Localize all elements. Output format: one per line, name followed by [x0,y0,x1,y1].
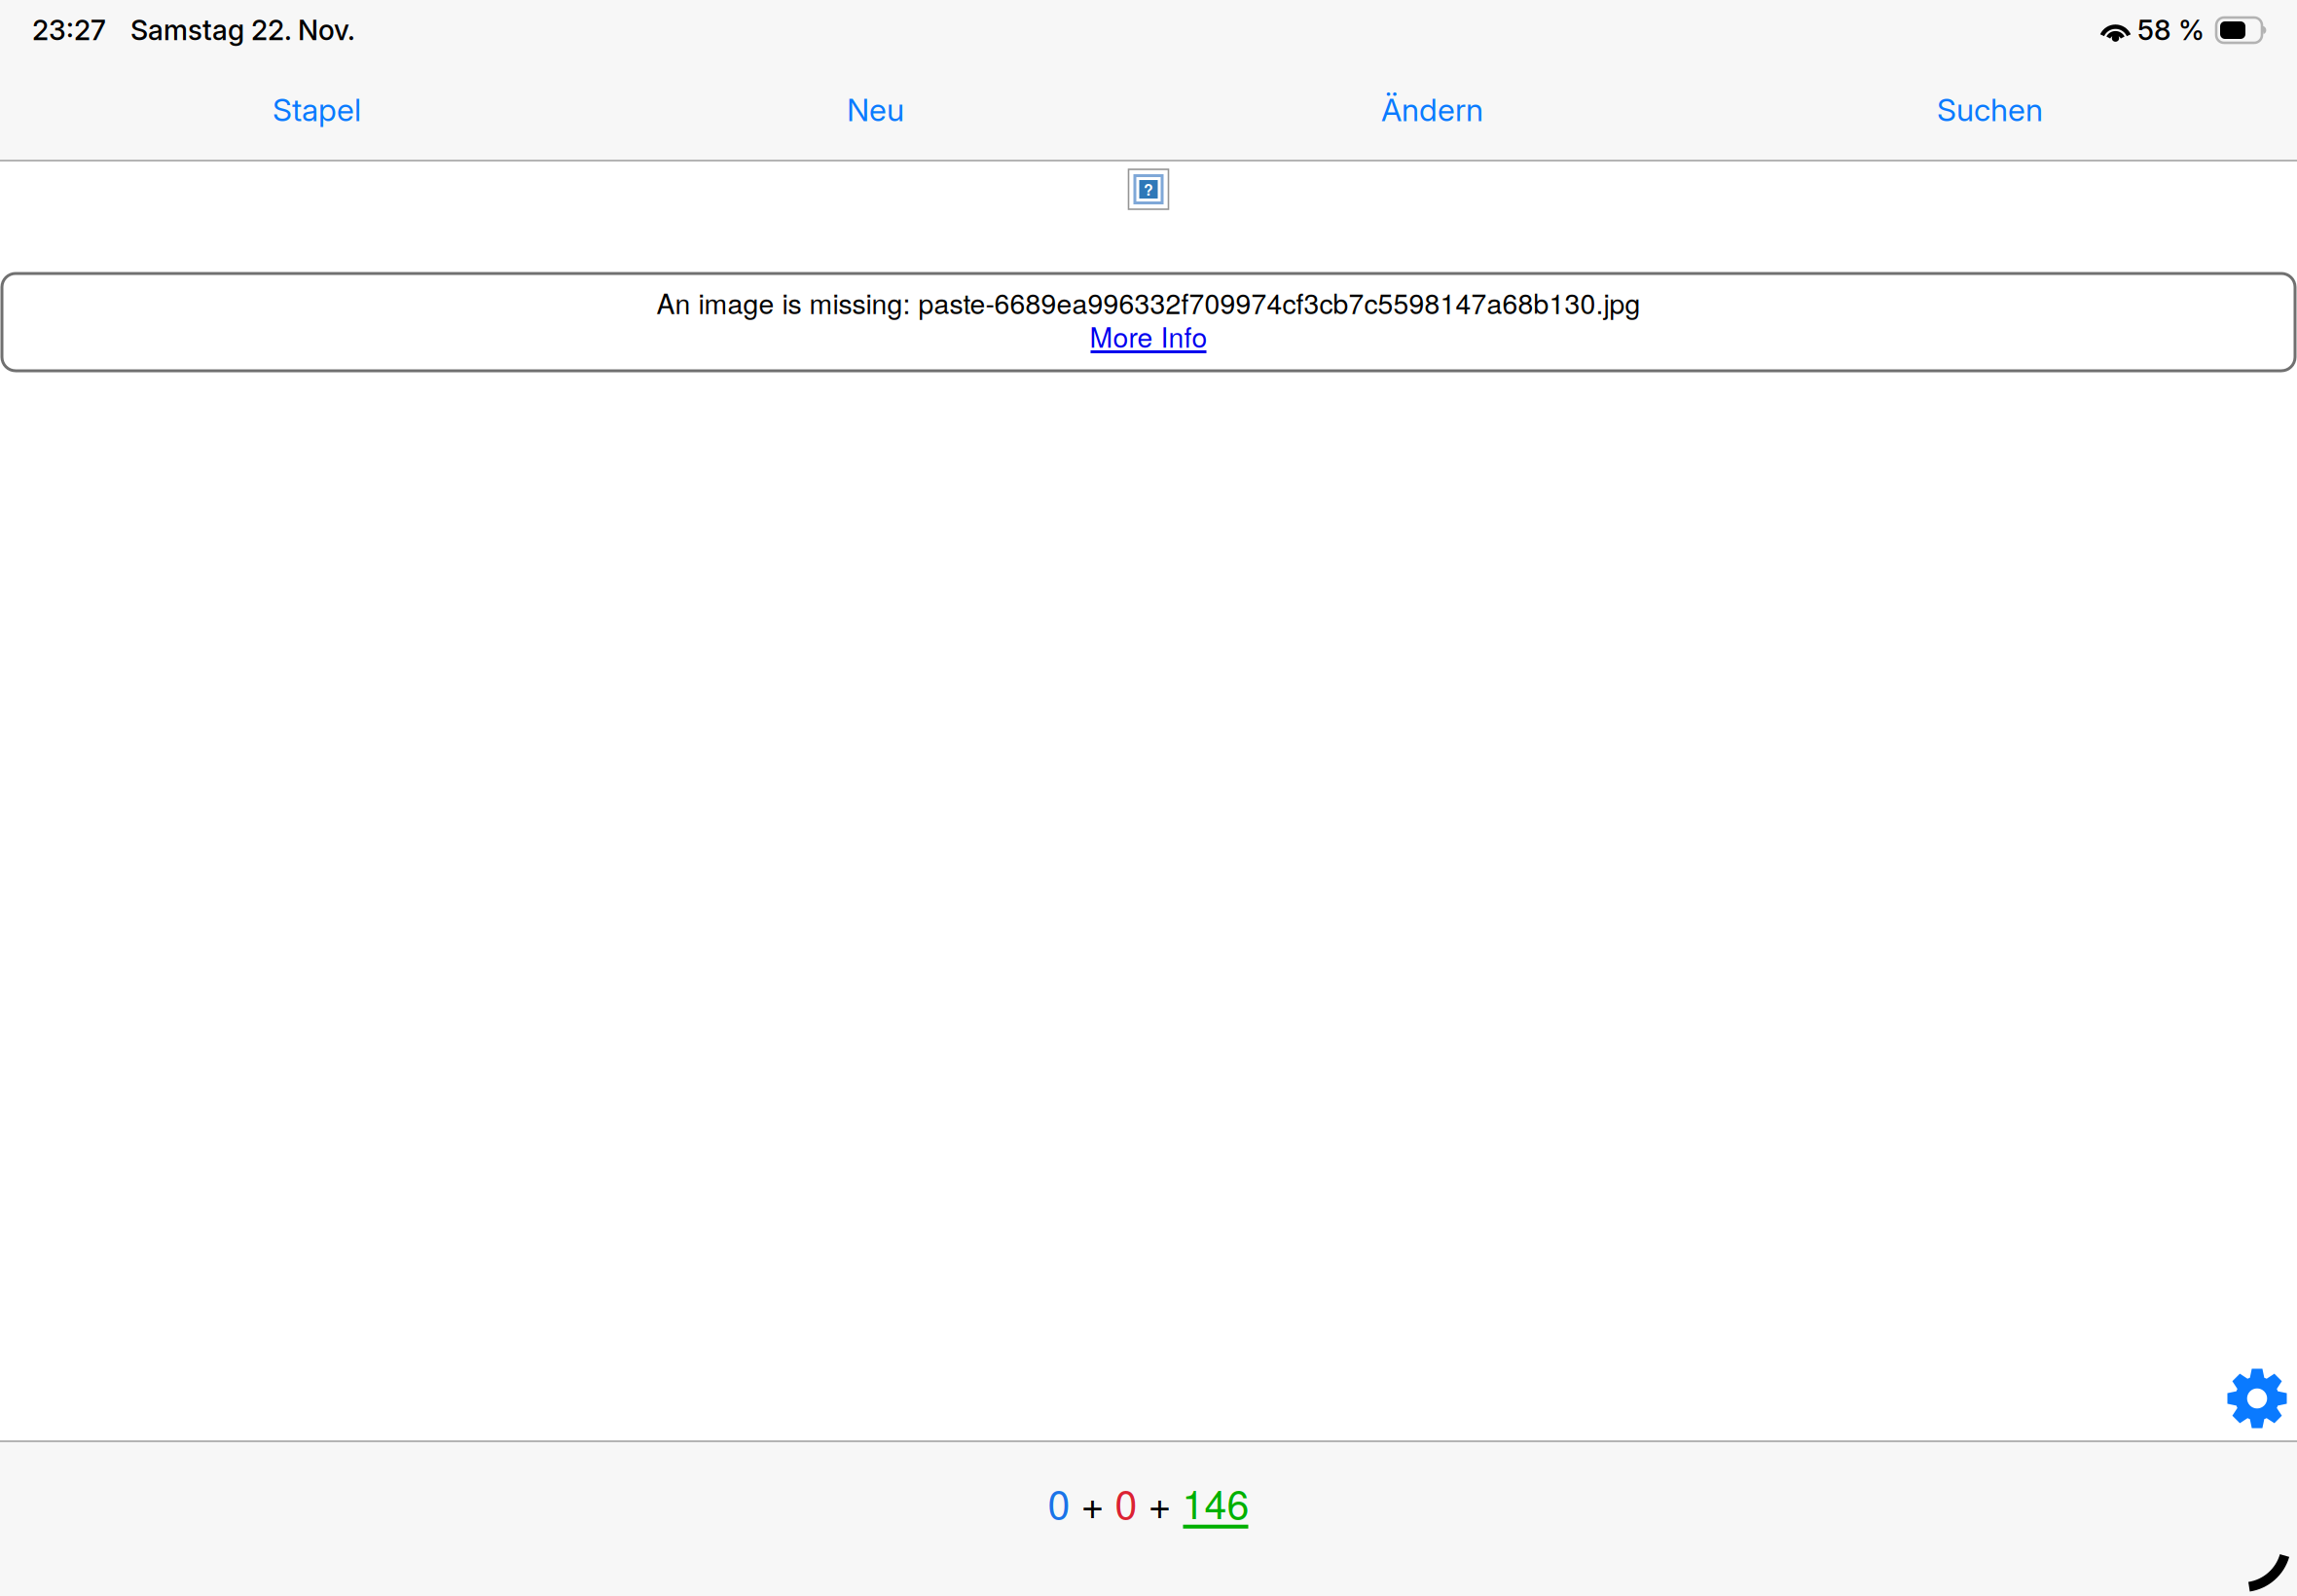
staticText: Ändern [1381,91,1483,129]
staticText: ? [1144,178,1153,200]
staticText: 146 [1182,1473,1249,1531]
staticText: 58 % [2137,13,2205,47]
staticText: 23:27 [32,13,106,47]
staticText: Neu [847,91,904,129]
staticText: More Info [1090,316,1207,355]
staticText: Stapel [273,91,361,129]
staticText: Suchen [1937,91,2043,129]
button[interactable]: Suchen [1937,60,2043,160]
button[interactable]: Undo [2235,1540,2297,1596]
staticText: + [1137,1473,1182,1531]
button[interactable]: Settings [2227,1368,2287,1429]
button[interactable]: Stapel [273,60,361,160]
staticText: + [1070,1473,1115,1531]
button[interactable]: More Info [1090,321,1207,353]
button[interactable]: Neu [847,60,904,160]
staticText: Samstag 22. Nov. [130,13,355,47]
staticText: An image is missing: paste-6689ea996332f… [656,282,1641,322]
staticText: 0 [1115,1473,1137,1531]
button[interactable]: Ändern [1381,60,1483,160]
staticText: 0 [1048,1473,1070,1531]
